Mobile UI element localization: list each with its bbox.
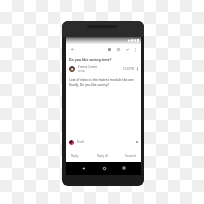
staticText: finally, Do you like saving?: [69, 83, 109, 87]
staticText: Do you like saving time?: [69, 57, 112, 62]
button[interactable]: Snooze: [114, 44, 123, 55]
staticText: Emma Carter: [78, 65, 98, 69]
button[interactable]: Archive: [105, 44, 114, 55]
staticText: to me: [78, 69, 86, 73]
button[interactable]: Mark done: [123, 44, 132, 55]
button[interactable]: Home: [100, 164, 108, 172]
button[interactable]: Reply: [69, 153, 81, 159]
button[interactable]: Reply all: [95, 153, 110, 159]
staticText: Lots of inbox is the fastest module like…: [69, 78, 138, 82]
staticText: Reply all: [97, 154, 108, 158]
button[interactable]: Back: [68, 44, 76, 55]
button[interactable]: Forward: [123, 153, 138, 159]
staticText: 12:30 PM: [123, 67, 135, 71]
button[interactable]: More options: [132, 44, 139, 55]
staticText: Forward: [125, 154, 136, 158]
button[interactable]: Recents: [120, 164, 128, 172]
button[interactable]: Back: [79, 164, 87, 172]
staticText: Reply: [71, 154, 79, 158]
staticText: Draft: [77, 140, 84, 144]
